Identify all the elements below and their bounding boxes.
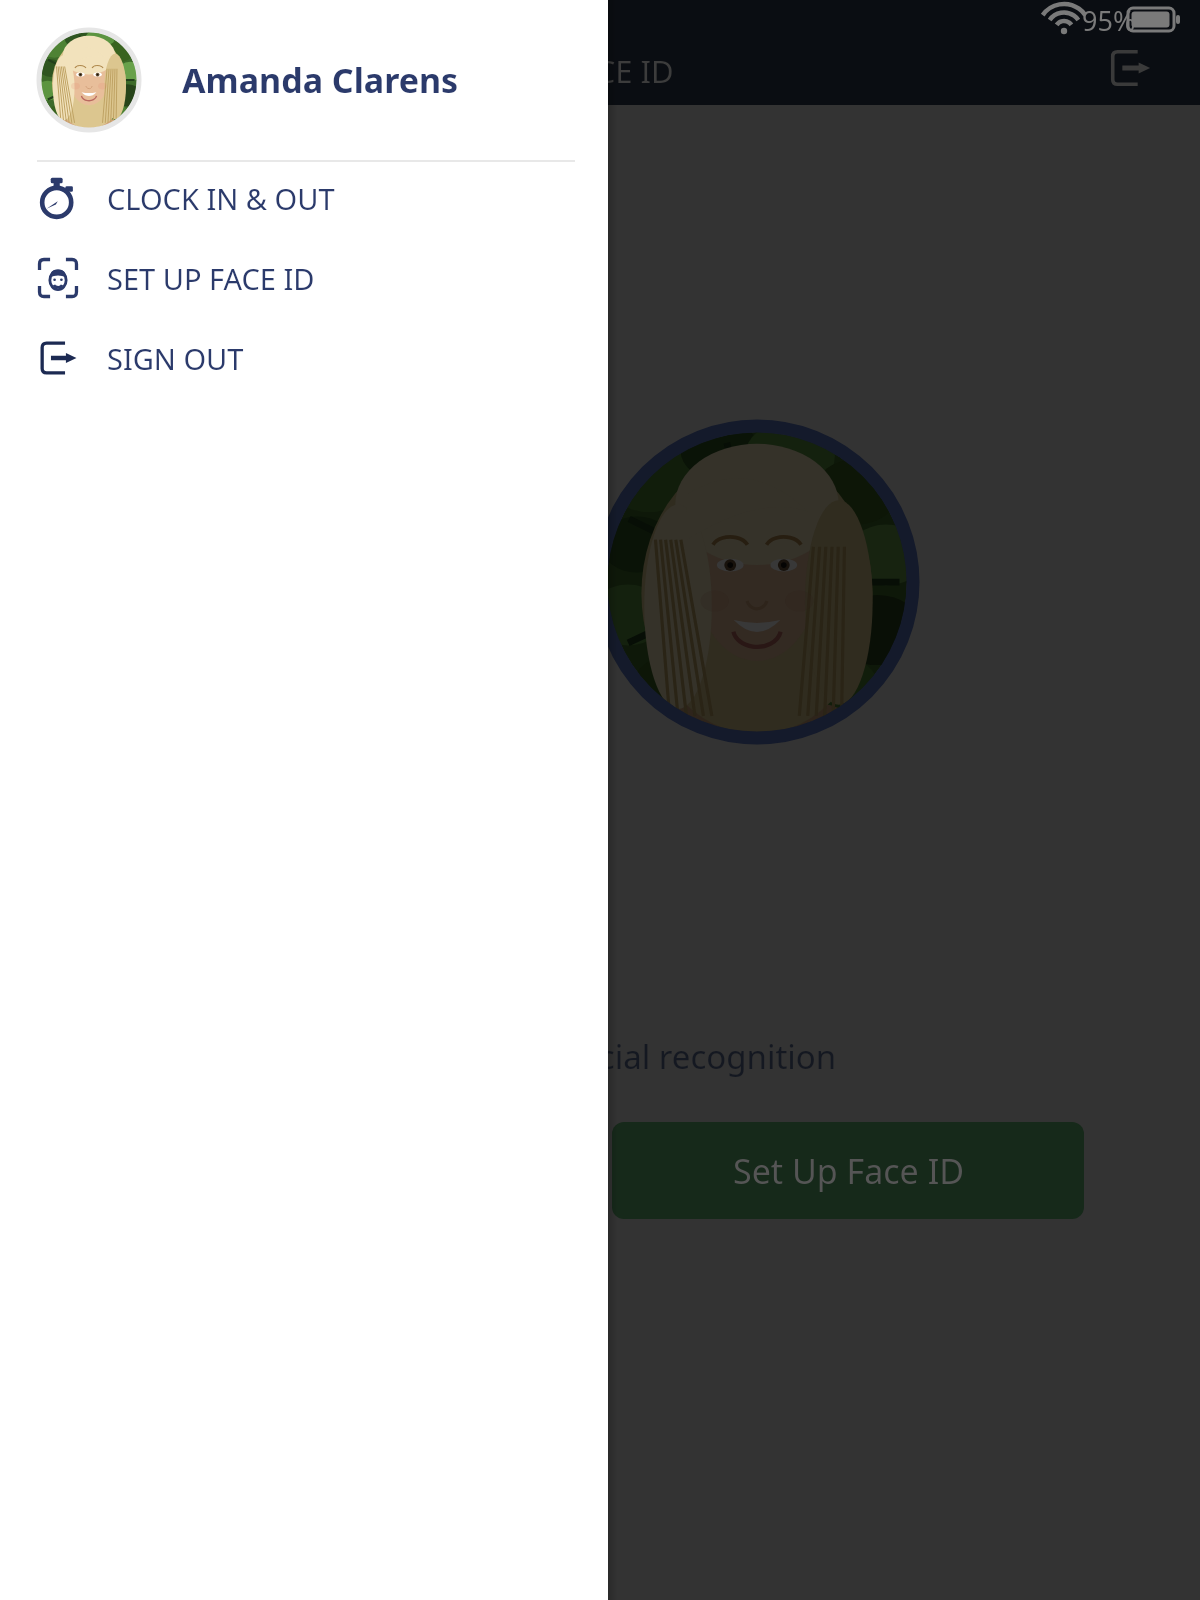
staticText: Tap below to set up facial recognition xyxy=(260,1034,837,1079)
staticText: Set Up Face ID xyxy=(733,1148,964,1194)
button[interactable]: Sign out xyxy=(1104,42,1156,94)
staticText: Amanda Clarens xyxy=(182,57,459,103)
button[interactable]: Amanda Clarens xyxy=(0,0,608,160)
button[interactable]: CLOCK IN & OUT xyxy=(0,176,608,220)
button[interactable]: SIGN OUT xyxy=(0,336,608,380)
staticText: CLOCK IN & OUT xyxy=(107,179,335,218)
button[interactable]: Set Up Face ID xyxy=(612,1122,1084,1219)
staticText: SET UP FACE ID xyxy=(107,259,315,298)
staticText: 95% xyxy=(1082,2,1136,39)
staticText: SET UP FACE ID xyxy=(452,50,674,92)
staticText: SIGN OUT xyxy=(107,339,244,378)
button[interactable]: SET UP FACE ID xyxy=(0,256,608,300)
